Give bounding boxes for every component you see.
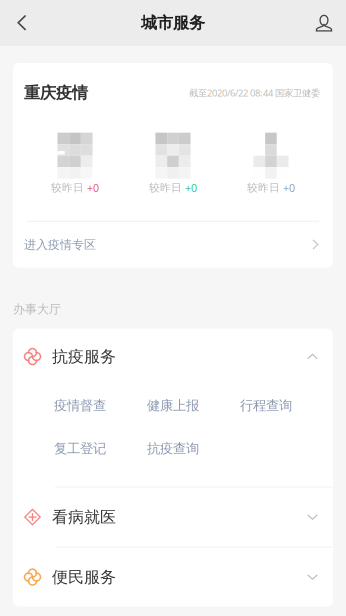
- staticText: +0: [283, 181, 295, 195]
- button[interactable]: 健康上报: [147, 390, 240, 422]
- button[interactable]: 复工登记: [54, 433, 147, 465]
- staticText: 重庆疫情: [24, 83, 88, 103]
- staticText: 较昨日: [149, 181, 182, 194]
- staticText: +0: [185, 181, 197, 195]
- button[interactable]: 抗疫查询: [147, 433, 240, 465]
- button[interactable]: 便民服务: [13, 548, 333, 607]
- staticText: +0: [87, 181, 99, 195]
- staticText: 健康上报: [147, 397, 199, 414]
- button[interactable]: 行程查询: [240, 390, 333, 422]
- staticText: 行程查询: [240, 397, 292, 414]
- button[interactable]: 看病就医: [13, 488, 333, 547]
- button[interactable]: 抗疫服务: [13, 329, 333, 385]
- staticText: 进入疫情专区: [24, 237, 96, 252]
- staticText: 较昨日: [247, 181, 280, 194]
- staticText: 疫情督查: [54, 397, 106, 414]
- button[interactable]: Back: [0, 0, 44, 46]
- button[interactable]: 疫情督查: [54, 390, 147, 422]
- staticText: 截至2020/6/22 08:44 国家卫健委: [189, 87, 320, 99]
- staticText: 城市服务: [141, 13, 205, 33]
- staticText: 抗疫服务: [52, 347, 116, 366]
- staticText: 办事大厅: [13, 302, 61, 316]
- staticText: 复工登记: [54, 440, 106, 457]
- button[interactable]: 进入疫情专区: [13, 222, 333, 268]
- button[interactable]: Profile: [302, 0, 346, 46]
- staticText: 抗疫查询: [147, 440, 199, 457]
- staticText: 便民服务: [52, 567, 116, 587]
- staticText: 较昨日: [51, 181, 84, 194]
- staticText: 看病就医: [52, 507, 116, 527]
